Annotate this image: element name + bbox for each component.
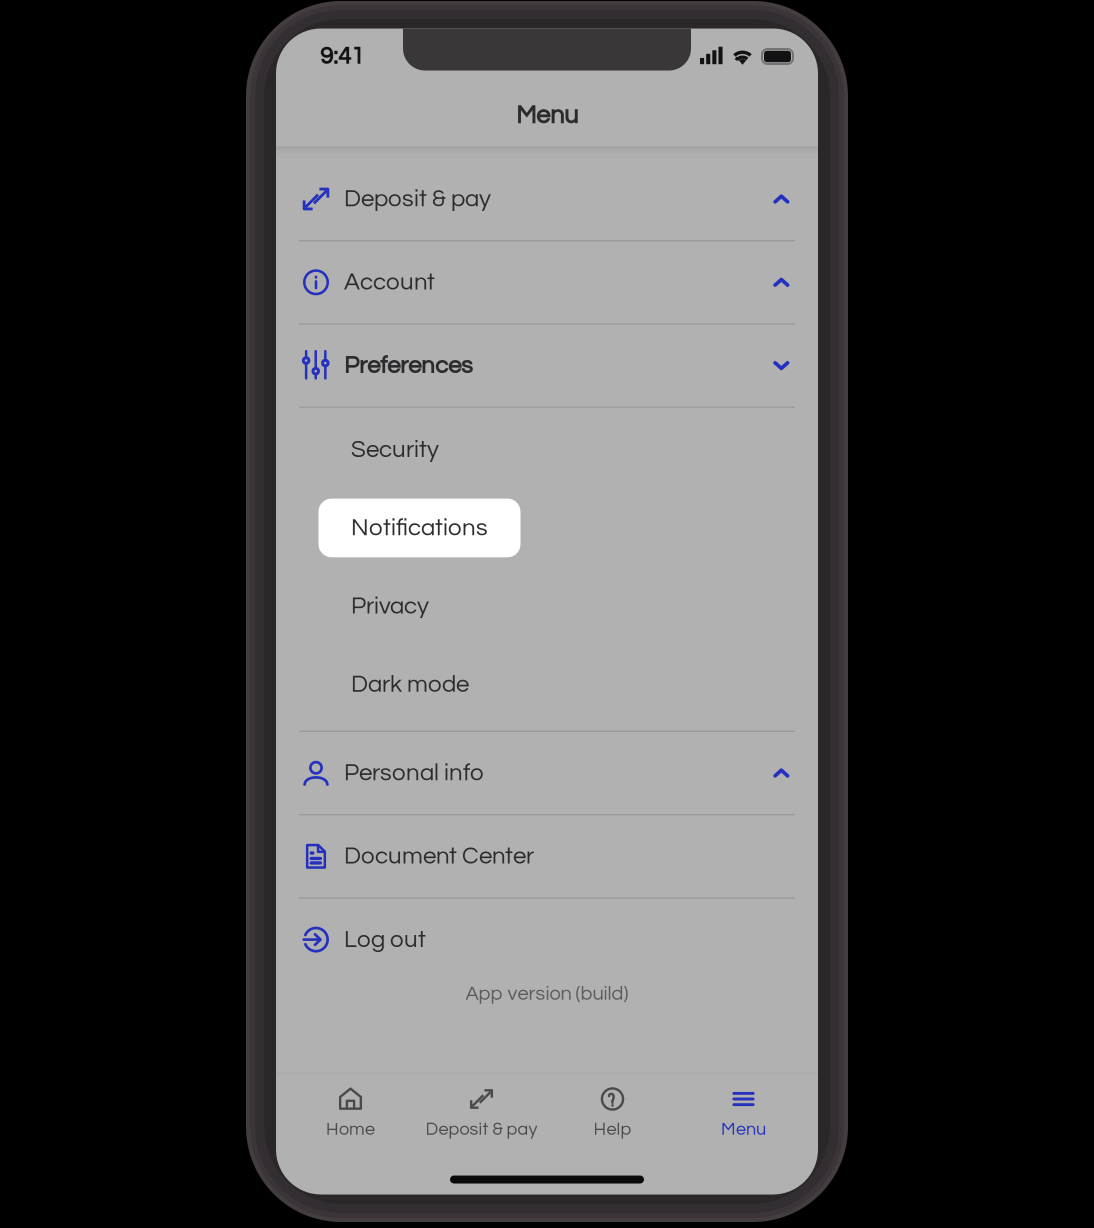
staticText: Menu [516,102,578,129]
button[interactable]: Deposit & pay [276,158,818,240]
staticText: Home [326,1120,375,1138]
button[interactable]: Menu [678,1074,809,1150]
staticText: App version (build) [465,983,628,1004]
button[interactable]: Home [285,1074,416,1150]
staticText: Help [593,1120,631,1138]
button[interactable]: Deposit & pay [416,1074,547,1150]
staticText: Preferences [344,353,473,378]
staticText: Menu [721,1120,766,1138]
button[interactable]: Preferences [276,325,818,407]
staticText: Deposit & pay [344,187,491,211]
staticText: Deposit & pay [425,1120,537,1138]
button[interactable]: Menu [276,84,818,146]
staticText: 9:41 [320,44,364,69]
button[interactable]: Document Center [276,815,818,897]
staticText: Privacy [351,594,429,618]
staticText: Document Center [344,844,534,869]
button[interactable]: Help [547,1074,678,1150]
button[interactable]: Privacy [276,577,818,635]
button[interactable]: Account [276,241,818,323]
button[interactable]: Notifications [276,499,818,557]
button[interactable]: Dark mode [276,655,818,714]
staticText: Personal info [344,761,484,785]
button[interactable]: Log out [276,899,818,981]
button[interactable]: Personal info [276,732,818,814]
staticText: Notifications [351,516,488,540]
staticText: Security [351,437,439,462]
staticText: Log out [344,927,426,952]
staticText: Account [344,270,435,295]
staticText: Dark mode [351,672,469,697]
button[interactable]: Security [276,420,818,479]
